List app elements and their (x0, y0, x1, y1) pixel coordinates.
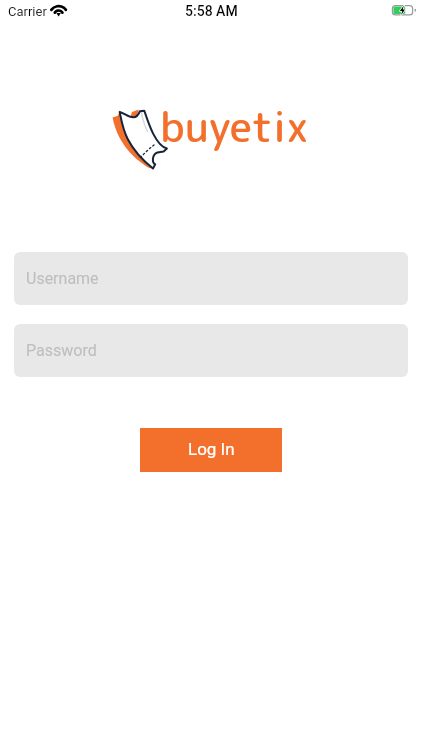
button[interactable]: Log In (140, 428, 282, 472)
staticText: buyetix (160, 97, 308, 156)
staticText: Username (26, 269, 99, 288)
button[interactable]: Password (14, 324, 408, 377)
staticText: Password (26, 341, 97, 360)
button[interactable]: Username (14, 252, 408, 305)
staticText: Carrier (8, 4, 47, 19)
staticText: 5:58 AM (185, 3, 238, 19)
staticText: Log In (188, 439, 235, 459)
